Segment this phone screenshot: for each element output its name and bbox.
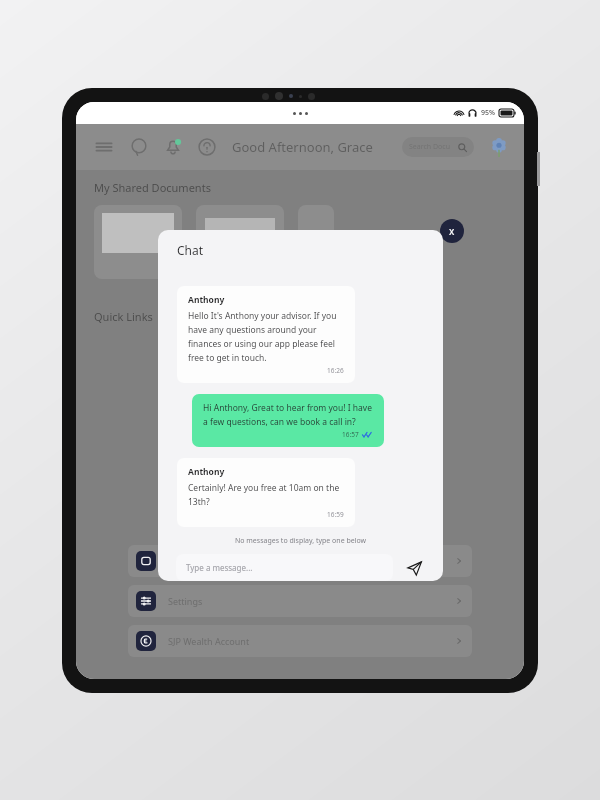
staticText: Good Afternoon, Grace: [232, 138, 373, 156]
staticText: My Shared Documents: [94, 180, 211, 195]
staticText: Quick Links: [94, 309, 153, 324]
staticText: Certainly! Are you free at 10am on the 1…: [188, 482, 344, 507]
staticText: Chat: [177, 242, 204, 258]
button[interactable]: Close chat: [440, 219, 464, 243]
button[interactable]: Notifications: [164, 138, 182, 156]
staticText: 95%: [481, 108, 495, 118]
button[interactable]: Ne: [196, 205, 284, 279]
staticText: Type a message...: [186, 562, 253, 573]
button[interactable]: Help: [198, 138, 216, 156]
staticText: x: [449, 224, 455, 238]
button[interactable]: Hi Anthony, Great to hear from you! I ha…: [192, 394, 384, 447]
staticText: Hello It's Anthony your advisor. If you …: [188, 310, 344, 363]
button[interactable]: Menu: [94, 137, 114, 157]
staticText: Settings: [168, 595, 203, 607]
button[interactable]: Settings: [128, 585, 472, 617]
button[interactable]: [94, 205, 182, 279]
staticText: Anthony: [188, 294, 225, 306]
staticText: 16:57: [342, 430, 359, 439]
staticText: Anthony: [188, 466, 225, 478]
staticText: No messages to display, type one below: [158, 536, 443, 546]
button[interactable]: Profile: [488, 136, 510, 158]
staticText: 16:26: [327, 366, 344, 375]
staticText: 16:59: [327, 510, 344, 519]
button[interactable]: Type a message...: [176, 554, 393, 581]
button[interactable]: Messages: [130, 138, 148, 156]
button[interactable]: Anthony: [177, 286, 355, 383]
button[interactable]: Send: [403, 557, 425, 579]
staticText: Search Docu: [409, 142, 451, 152]
staticText: SJP Wealth Account: [168, 635, 250, 647]
button[interactable]: Documents: [128, 545, 472, 577]
button[interactable]: SJP Wealth Account: [128, 625, 472, 657]
staticText: Documents: [168, 555, 217, 567]
button[interactable]: Search Docu: [402, 137, 474, 157]
button[interactable]: Anthony: [177, 458, 355, 527]
staticText: Hi Anthony, Great to hear from you! I ha…: [203, 402, 373, 427]
